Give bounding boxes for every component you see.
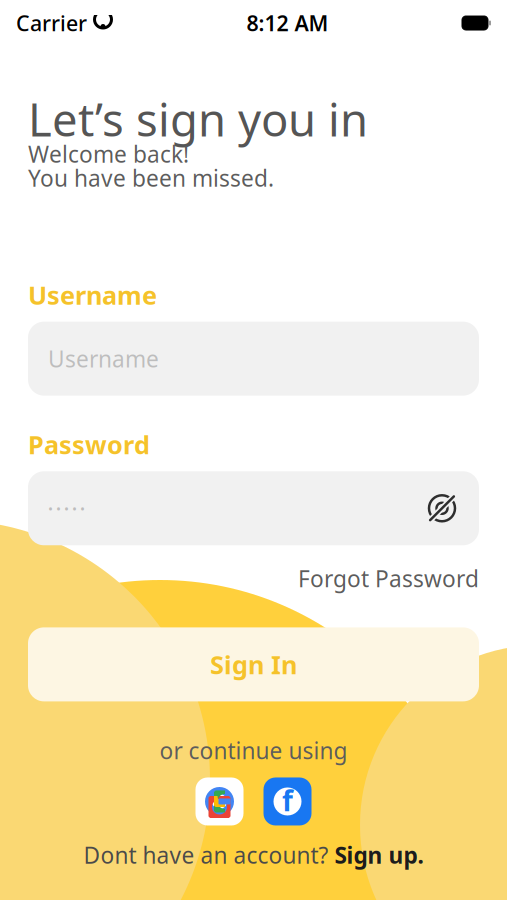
staticText: You have been missed. [28,163,274,193]
staticText: Let’s sign you in [28,89,368,149]
button[interactable]: Dont have an account? [0,834,507,876]
staticText: Welcome back! [28,139,189,169]
staticText: Sign up. [334,840,423,870]
staticText: G [209,782,230,821]
staticText: Username [28,278,157,312]
staticText: or continue using [159,735,347,765]
staticText: Username [48,344,159,374]
button[interactable]: Continue with Facebook [263,777,311,825]
button[interactable]: Username [28,322,479,396]
staticText: • • • • • [48,499,85,517]
staticText: Sign In [210,648,297,681]
staticText: Dont have an account? [83,840,334,870]
staticText: 8:12 AM [246,9,328,37]
button[interactable]: Continue with Google [195,777,243,825]
button[interactable]: Forgot Password [298,559,479,597]
staticText: f [282,782,293,819]
button[interactable]: • • • • • [28,471,479,545]
staticText: Forgot Password [298,563,479,593]
button[interactable]: Sign In [28,627,479,701]
staticText: Carrier [16,9,87,37]
staticText: Password [28,428,150,461]
